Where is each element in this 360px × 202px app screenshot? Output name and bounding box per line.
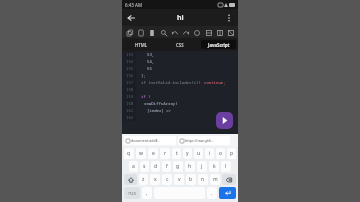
button[interactable]: a bbox=[129, 161, 138, 172]
button[interactable]: s bbox=[140, 161, 149, 172]
staticText: if ( bbox=[141, 94, 151, 99]
button[interactable]: p bbox=[227, 148, 236, 159]
button[interactable]: Paste bbox=[136, 28, 145, 37]
button[interactable]: JavaScript bbox=[201, 40, 236, 49]
button[interactable]: v bbox=[174, 174, 184, 185]
button[interactable]: Enter bbox=[219, 187, 236, 199]
staticText: r bbox=[164, 150, 167, 157]
staticText: }; bbox=[141, 73, 146, 78]
staticText: b bbox=[189, 176, 193, 183]
staticText: j bbox=[201, 163, 203, 170]
button[interactable]: i bbox=[205, 148, 214, 159]
button[interactable]: ?123 bbox=[124, 187, 140, 199]
staticText: n bbox=[201, 176, 205, 183]
staticText: 54, bbox=[147, 59, 155, 64]
button[interactable]: j bbox=[197, 161, 207, 172]
staticText: 161 bbox=[126, 108, 134, 113]
staticText: 6:43 AM bbox=[125, 2, 143, 8]
staticText: t bbox=[176, 150, 178, 157]
staticText: h bbox=[188, 163, 192, 170]
staticText: . bbox=[211, 190, 213, 197]
staticText: 162 bbox=[126, 115, 134, 120]
staticText: 53, bbox=[147, 52, 155, 57]
staticText: q bbox=[127, 150, 131, 157]
button[interactable]: b bbox=[186, 174, 196, 185]
button[interactable]: Copy bbox=[125, 28, 134, 37]
button[interactable]: CSS bbox=[162, 40, 197, 49]
button[interactable]: q bbox=[124, 148, 134, 159]
staticText: i bbox=[209, 150, 211, 157]
button[interactable]: m bbox=[210, 174, 220, 185]
button[interactable]: n bbox=[198, 174, 208, 185]
staticText: https://raw.gith... bbox=[185, 138, 215, 143]
staticText: [index] => bbox=[147, 108, 171, 113]
staticText: JavaScript bbox=[208, 42, 230, 48]
button[interactable]: h bbox=[185, 161, 195, 172]
button[interactable]: . bbox=[207, 187, 217, 199]
staticText: m bbox=[213, 176, 218, 183]
staticText: , bbox=[146, 190, 148, 197]
staticText: ?123 bbox=[128, 191, 136, 196]
staticText: e bbox=[152, 150, 155, 157]
staticText: CSS bbox=[176, 42, 184, 48]
staticText: y bbox=[186, 150, 189, 157]
button[interactable]: Backspace bbox=[222, 174, 236, 185]
staticText: z bbox=[142, 176, 145, 183]
button[interactable]: z bbox=[139, 174, 148, 185]
staticText: 55 bbox=[147, 66, 152, 71]
button[interactable]: Columns bbox=[215, 28, 224, 37]
staticText: s bbox=[143, 163, 146, 170]
staticText: hi bbox=[177, 13, 184, 23]
button[interactable]: w bbox=[136, 148, 146, 159]
staticText: a bbox=[132, 163, 135, 170]
staticText: 155 bbox=[126, 66, 134, 71]
button[interactable]: Select bbox=[147, 28, 156, 37]
staticText: 158 bbox=[126, 87, 134, 92]
staticText: 157 bbox=[126, 80, 134, 85]
staticText: continue; bbox=[204, 80, 226, 85]
button[interactable]: r bbox=[160, 148, 170, 159]
button[interactable]: More options bbox=[222, 11, 236, 25]
button[interactable]: c bbox=[162, 174, 172, 185]
staticText: l bbox=[225, 163, 227, 170]
staticText: d bbox=[154, 163, 158, 170]
staticText: v bbox=[178, 176, 181, 183]
button[interactable]: Refresh bbox=[192, 28, 201, 37]
button[interactable]: https://raw.gith... bbox=[180, 136, 228, 145]
button[interactable]: Shift bbox=[124, 174, 137, 185]
button[interactable]: f bbox=[162, 161, 171, 172]
staticText: u bbox=[197, 150, 201, 157]
button[interactable]: Grid bbox=[204, 28, 213, 37]
staticText: 153 bbox=[126, 52, 134, 57]
button[interactable]: l bbox=[221, 161, 231, 172]
button[interactable]: Run bbox=[216, 112, 233, 129]
staticText: 160 bbox=[126, 101, 134, 106]
button[interactable]: Fullscreen bbox=[226, 28, 235, 37]
staticText: 159 bbox=[126, 94, 134, 99]
button[interactable]: u bbox=[194, 148, 203, 159]
button[interactable]: , bbox=[142, 187, 152, 199]
button[interactable]: e bbox=[148, 148, 158, 159]
staticText: o bbox=[219, 150, 223, 157]
button[interactable]: Back bbox=[124, 11, 138, 25]
button[interactable]: Search bbox=[159, 28, 168, 37]
staticText: document.addE... bbox=[131, 138, 161, 143]
staticText: w bbox=[139, 150, 143, 157]
button[interactable]: Redo bbox=[181, 28, 190, 37]
button[interactable]: k bbox=[209, 161, 219, 172]
staticText: c bbox=[166, 176, 169, 183]
staticText: 154 bbox=[126, 59, 134, 64]
staticText: 156 bbox=[126, 73, 134, 78]
button[interactable]: x bbox=[150, 174, 160, 185]
button[interactable]: d bbox=[151, 161, 160, 172]
staticText: if (notValid.includes(i)) bbox=[141, 80, 204, 85]
button[interactable]: y bbox=[183, 148, 192, 159]
button[interactable]: g bbox=[173, 161, 183, 172]
button[interactable]: t bbox=[172, 148, 181, 159]
button[interactable]: Undo bbox=[170, 28, 179, 37]
button[interactable]: HTML bbox=[124, 40, 158, 49]
button[interactable]: document.addE... bbox=[126, 136, 174, 145]
button[interactable]: o bbox=[216, 148, 225, 159]
